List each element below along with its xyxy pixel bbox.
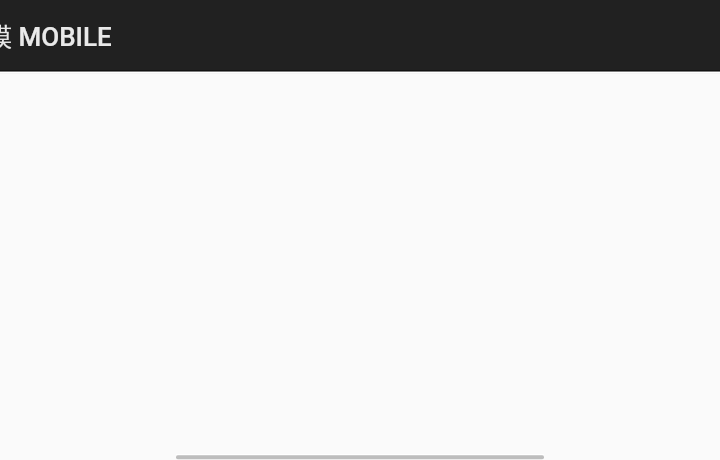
staticText: 規模 MOBILE (0, 21, 112, 54)
button[interactable]: 規模 MOBILE (0, 0, 720, 70)
button[interactable]: Horizontal scroll bar (176, 455, 544, 459)
